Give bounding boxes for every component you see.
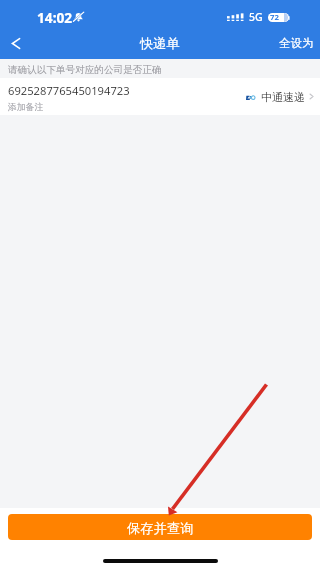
- staticText: 中通速递: [261, 90, 305, 104]
- staticText: 5G: [249, 10, 263, 24]
- staticText: 72: [270, 12, 279, 23]
- staticText: 保存并查询: [127, 520, 194, 537]
- staticText: 添加备注: [8, 102, 44, 113]
- button[interactable]: Back: [0, 27, 32, 59]
- button[interactable]: 6925287765450194723: [0, 78, 320, 115]
- staticText: 快递单: [140, 35, 180, 52]
- staticText: 6925287765450194723: [8, 83, 130, 98]
- staticText: 14:02: [37, 8, 73, 27]
- staticText: 全设为: [279, 36, 314, 51]
- button[interactable]: 全设为: [269, 27, 320, 59]
- staticText: 请确认以下单号对应的公司是否正确: [8, 64, 162, 76]
- button[interactable]: 保存并查询: [8, 514, 312, 540]
